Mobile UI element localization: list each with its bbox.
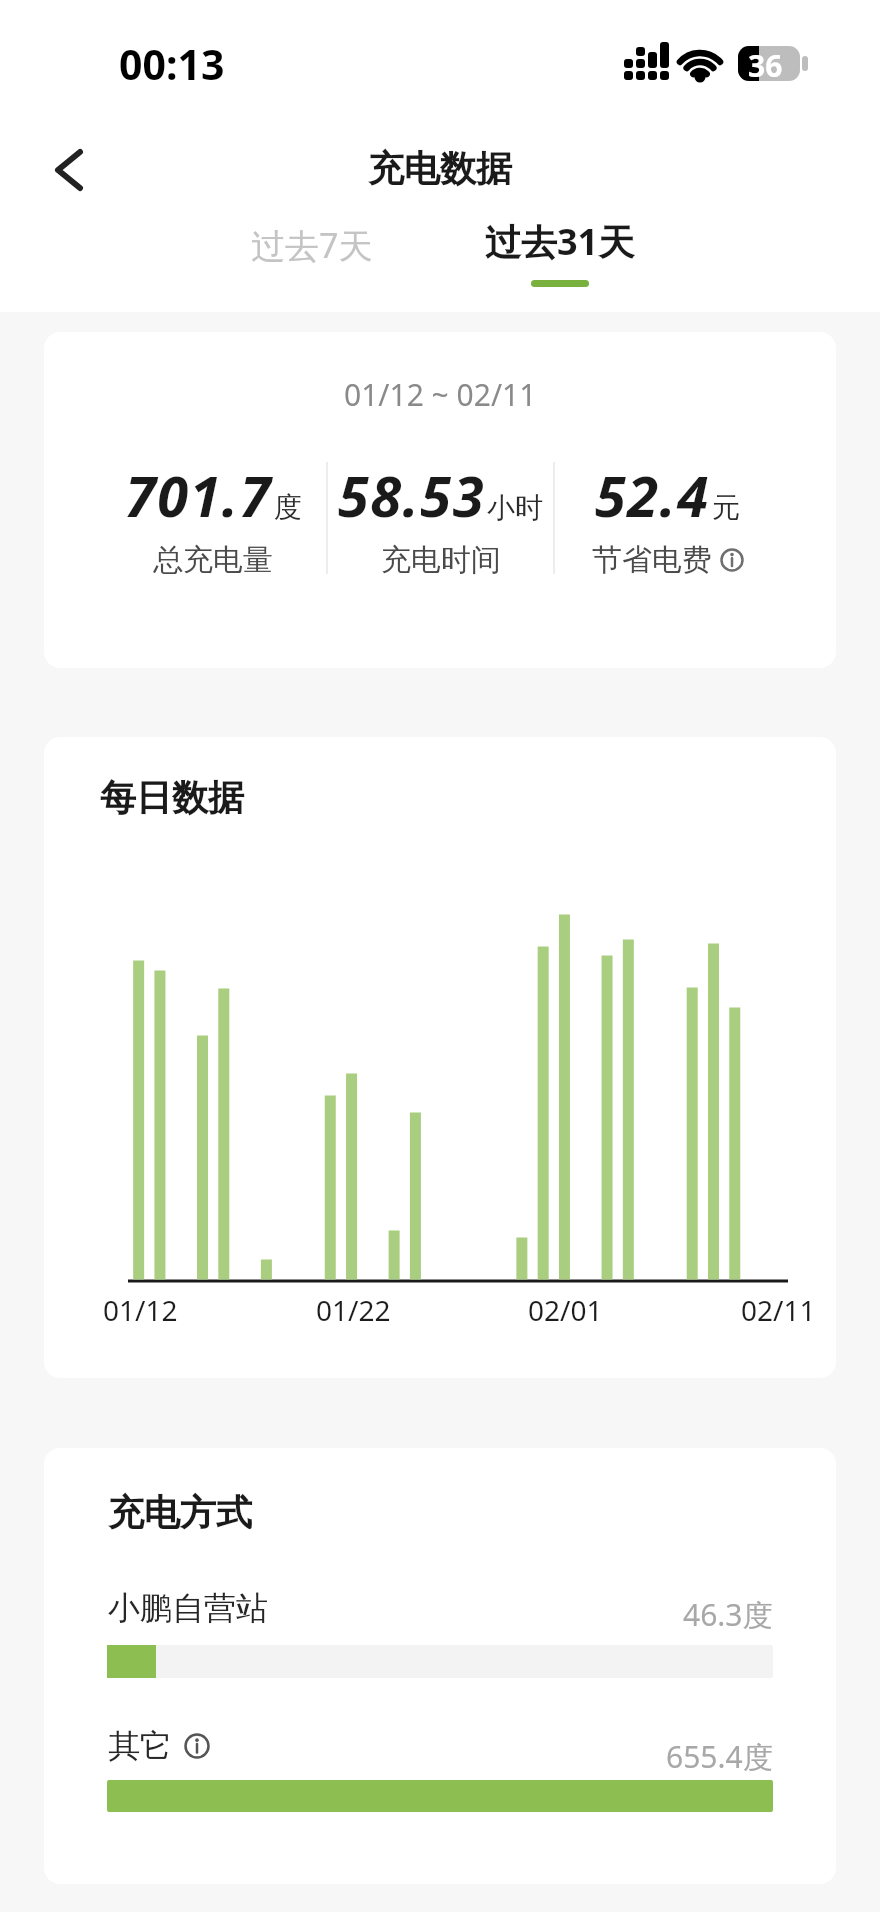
button[interactable]: 过去7天	[236, 210, 388, 280]
staticText: 过去7天	[251, 222, 373, 268]
button[interactable]	[184, 1733, 210, 1759]
staticText: 02/11	[741, 1291, 816, 1329]
staticText: 过去31天	[485, 217, 635, 266]
staticText: 度	[274, 490, 302, 525]
staticText: 充电时间	[381, 541, 501, 579]
staticText: 52.4	[595, 457, 710, 533]
staticText: 其它	[108, 1726, 172, 1766]
staticText: 元	[712, 490, 740, 525]
button[interactable]	[38, 138, 102, 202]
staticText: 小鹏自营站	[108, 1588, 268, 1628]
staticText: 655.4度	[666, 1736, 773, 1777]
staticText: 00:13	[119, 36, 225, 92]
button[interactable]	[720, 548, 744, 572]
staticText: 701.7	[125, 457, 272, 533]
staticText: 总充电量	[153, 541, 273, 579]
staticText: 02/01	[528, 1291, 603, 1329]
staticText: 36	[748, 45, 783, 86]
staticText: 每日数据	[100, 775, 244, 820]
staticText: 46.3度	[683, 1594, 773, 1635]
staticText: 58.53	[338, 457, 485, 533]
staticText: 节省电费	[592, 541, 712, 579]
staticText: 小时	[487, 490, 543, 525]
staticText: 01/12	[103, 1291, 178, 1329]
button[interactable]: 过去31天	[480, 210, 640, 287]
staticText: 充电数据	[368, 146, 512, 191]
staticText: 01/12 ~ 02/11	[344, 374, 537, 415]
staticText: 充电方式	[108, 1490, 252, 1535]
staticText: 01/22	[316, 1291, 391, 1329]
